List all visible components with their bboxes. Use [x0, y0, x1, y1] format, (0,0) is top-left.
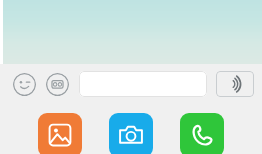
- button[interactable]: Stickers: [46, 73, 69, 96]
- button[interactable]: Gallery: [38, 113, 82, 154]
- button[interactable]: Message input: [79, 71, 207, 97]
- button[interactable]: Voice message: [216, 71, 254, 97]
- button[interactable]: Call: [180, 113, 224, 154]
- button[interactable]: Camera: [109, 113, 153, 154]
- button[interactable]: Emoji: [13, 73, 36, 96]
